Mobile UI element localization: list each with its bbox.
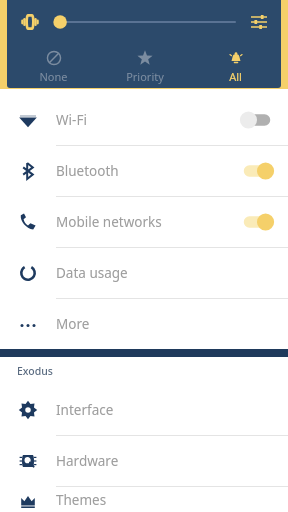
button[interactable]: Wi-Fi bbox=[0, 95, 288, 145]
button[interactable]: Wi-Fi switch bbox=[240, 107, 274, 133]
button[interactable]: Bluetooth switch bbox=[240, 158, 274, 184]
staticText: Mobile networks bbox=[56, 213, 240, 231]
button[interactable]: Themes bbox=[0, 487, 288, 512]
button[interactable]: Interface bbox=[0, 385, 288, 435]
button[interactable]: Sound settings bbox=[243, 6, 275, 38]
staticText: Wi-Fi bbox=[56, 111, 240, 129]
staticText: Interface bbox=[56, 401, 274, 419]
button[interactable]: Mobile networks bbox=[0, 197, 288, 247]
staticText: More bbox=[56, 315, 274, 333]
staticText: Themes bbox=[56, 491, 274, 509]
button[interactable]: More bbox=[0, 299, 288, 349]
staticText: Priority bbox=[126, 69, 164, 84]
button[interactable]: Volume slider bbox=[51, 9, 235, 35]
staticText: Data usage bbox=[56, 264, 274, 282]
button[interactable]: Bluetooth bbox=[0, 146, 288, 196]
button[interactable]: Mobile networks switch bbox=[240, 209, 274, 235]
button[interactable]: Priority bbox=[99, 44, 190, 88]
button[interactable]: Data usage bbox=[0, 248, 288, 298]
staticText: Hardware bbox=[56, 452, 274, 470]
staticText: Exodus bbox=[17, 364, 53, 378]
staticText: All bbox=[229, 69, 242, 84]
button[interactable]: None bbox=[7, 44, 99, 88]
button[interactable]: Hardware bbox=[0, 436, 288, 486]
staticText: None bbox=[39, 69, 68, 84]
button[interactable]: Vibrate mode bbox=[15, 7, 45, 37]
staticText: Bluetooth bbox=[56, 162, 240, 180]
button[interactable]: All bbox=[190, 44, 281, 88]
